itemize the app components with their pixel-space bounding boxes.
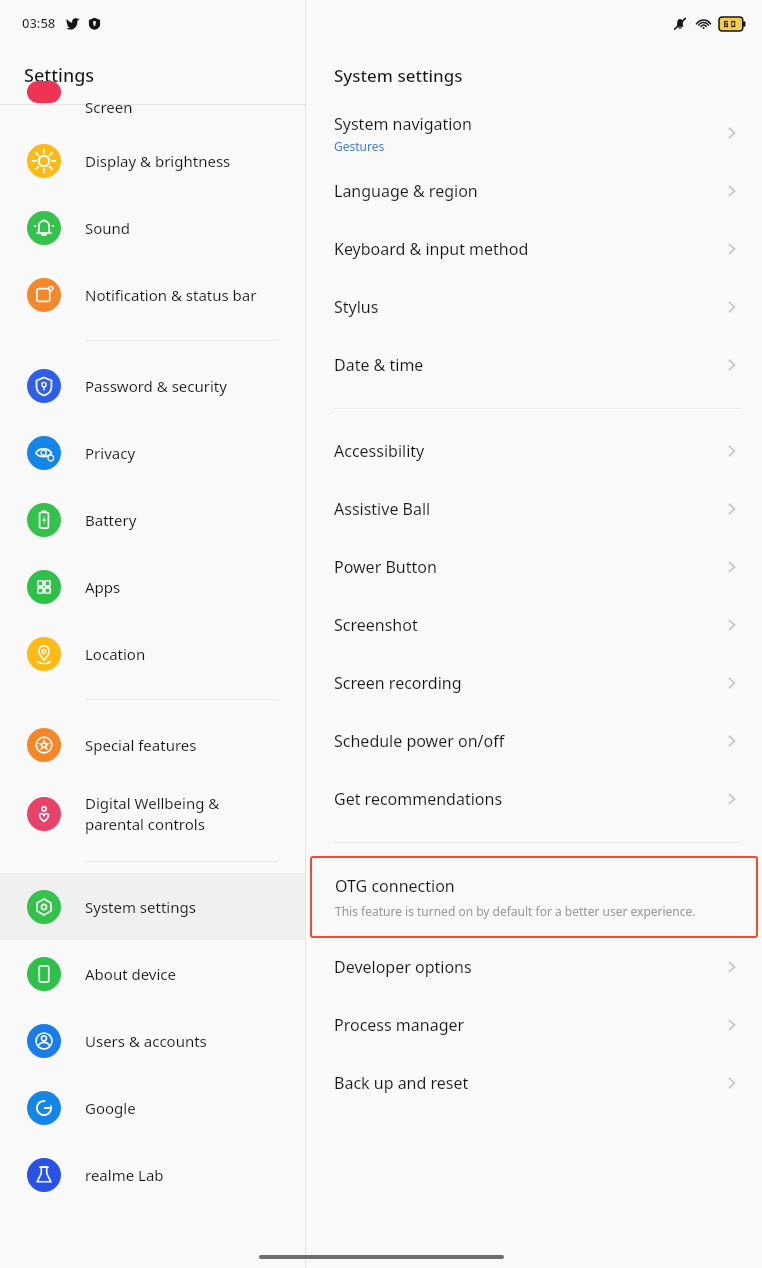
staticText: Sound — [85, 218, 131, 238]
button[interactable]: About device — [0, 940, 305, 1007]
staticText: Gestures — [334, 138, 385, 154]
staticText: Google — [85, 1098, 136, 1118]
button[interactable]: Screen — [0, 105, 305, 127]
button[interactable]: Display & brightness — [0, 127, 305, 194]
button[interactable]: Special features — [0, 711, 305, 778]
staticText: Keyboard & input method — [334, 238, 529, 260]
staticText: Process manager — [334, 1014, 465, 1036]
staticText: Privacy — [85, 443, 136, 463]
button[interactable]: Users & accounts — [0, 1007, 305, 1074]
button[interactable]: Get recommendations — [306, 770, 762, 828]
staticText: System navigation — [334, 113, 472, 135]
button[interactable]: Accessibility — [306, 422, 762, 480]
staticText: Screen — [85, 97, 133, 117]
button[interactable]: Assistive Ball — [306, 480, 762, 538]
staticText: OTG connection — [335, 875, 455, 897]
staticText: Assistive Ball — [334, 498, 431, 520]
staticText: Notification & status bar — [85, 285, 257, 305]
staticText: This feature is turned on by default for… — [335, 903, 696, 919]
staticText: System settings — [334, 64, 463, 87]
button[interactable]: Battery — [0, 486, 305, 553]
button[interactable]: Password & security — [0, 352, 305, 419]
staticText: Digital Wellbeing & parental controls — [85, 793, 220, 835]
button[interactable]: realme Lab — [0, 1141, 305, 1208]
staticText: Schedule power on/off — [334, 730, 505, 752]
staticText: Accessibility — [334, 440, 425, 462]
button[interactable]: System settings — [0, 873, 305, 940]
staticText: Special features — [85, 735, 197, 755]
button[interactable]: Apps — [0, 553, 305, 620]
button[interactable]: Stylus — [306, 278, 762, 336]
button[interactable]: Location — [0, 620, 305, 687]
button[interactable]: Digital Wellbeing & parental controls — [0, 778, 305, 849]
staticText: About device — [85, 964, 177, 984]
button[interactable]: Keyboard & input method — [306, 220, 762, 278]
button[interactable]: Date & time — [306, 336, 762, 394]
staticText: Back up and reset — [334, 1072, 469, 1094]
staticText: Password & security — [85, 376, 227, 396]
staticText: System settings — [85, 897, 196, 917]
button[interactable]: Notification & status bar — [0, 261, 305, 328]
button[interactable]: Schedule power on/off — [306, 712, 762, 770]
staticText: Display & brightness — [85, 151, 231, 171]
staticText: 03:58 — [22, 14, 56, 32]
staticText: Battery — [85, 510, 137, 530]
staticText: Location — [85, 644, 146, 664]
staticText: Screenshot — [334, 614, 418, 636]
button[interactable]: System navigation — [306, 104, 762, 162]
staticText: Settings — [24, 63, 95, 88]
staticText: Apps — [85, 577, 121, 597]
staticText: realme Lab — [85, 1165, 164, 1185]
button[interactable]: Process manager — [306, 996, 762, 1054]
button[interactable]: OTG connection — [310, 856, 758, 938]
button[interactable]: Language & region — [306, 162, 762, 220]
button[interactable]: Back up and reset — [306, 1054, 762, 1112]
button[interactable]: Privacy — [0, 419, 305, 486]
button[interactable]: Google — [0, 1074, 305, 1141]
button[interactable]: Screen recording — [306, 654, 762, 712]
staticText: Developer options — [334, 956, 472, 978]
staticText: Stylus — [334, 296, 379, 318]
button[interactable]: Sound — [0, 194, 305, 261]
button[interactable]: Power Button — [306, 538, 762, 596]
staticText: Get recommendations — [334, 788, 503, 810]
staticText: Language & region — [334, 180, 478, 202]
staticText: Screen recording — [334, 672, 462, 694]
button[interactable]: Screenshot — [306, 596, 762, 654]
staticText: Date & time — [334, 354, 424, 376]
button[interactable]: Developer options — [306, 938, 762, 996]
staticText: Power Button — [334, 556, 437, 578]
staticText: Users & accounts — [85, 1031, 207, 1051]
